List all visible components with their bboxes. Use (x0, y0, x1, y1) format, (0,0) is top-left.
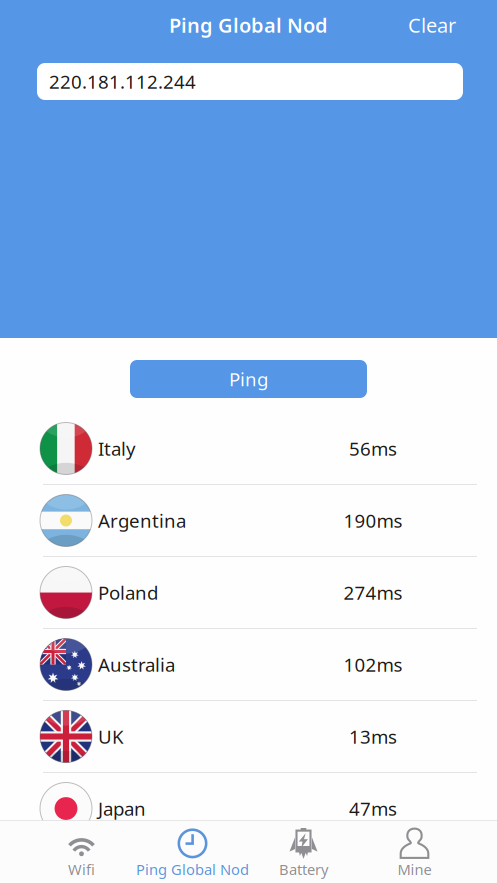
button[interactable]: Australia (0, 629, 497, 701)
button[interactable]: Japan (0, 773, 497, 845)
staticText: 47ms (349, 796, 397, 821)
staticText: 190ms (343, 508, 402, 533)
button[interactable]: UK (0, 701, 497, 773)
staticText: Ping (229, 367, 268, 391)
staticText: 220.181.112.244 (49, 69, 196, 94)
staticText: UK (98, 724, 124, 749)
staticText: 274ms (343, 580, 402, 605)
staticText: Ping Global Nod (136, 860, 249, 879)
staticText: Japan (98, 796, 146, 821)
button[interactable]: Mine (359, 821, 470, 883)
button[interactable]: Ping Global Nod (137, 821, 248, 883)
staticText: Ping Global Nod (169, 12, 328, 38)
staticText: 13ms (349, 724, 397, 749)
staticText: Poland (98, 580, 158, 605)
staticText: Wifi (68, 860, 95, 879)
button[interactable]: Ping (130, 360, 367, 398)
staticText: Argentina (98, 508, 186, 533)
button[interactable]: Poland (0, 557, 497, 629)
staticText: 102ms (343, 652, 402, 677)
staticText: Clear (408, 12, 456, 38)
button[interactable]: Italy (0, 413, 497, 485)
button[interactable]: Battery (248, 821, 359, 883)
staticText: 56ms (349, 436, 397, 461)
button[interactable]: Argentina (0, 485, 497, 557)
button[interactable]: Clear (408, 0, 497, 50)
staticText: Mine (397, 860, 431, 879)
staticText: Battery (279, 860, 328, 879)
staticText: Italy (98, 436, 136, 461)
staticText: Australia (98, 652, 175, 677)
button[interactable]: Wifi (26, 821, 137, 883)
